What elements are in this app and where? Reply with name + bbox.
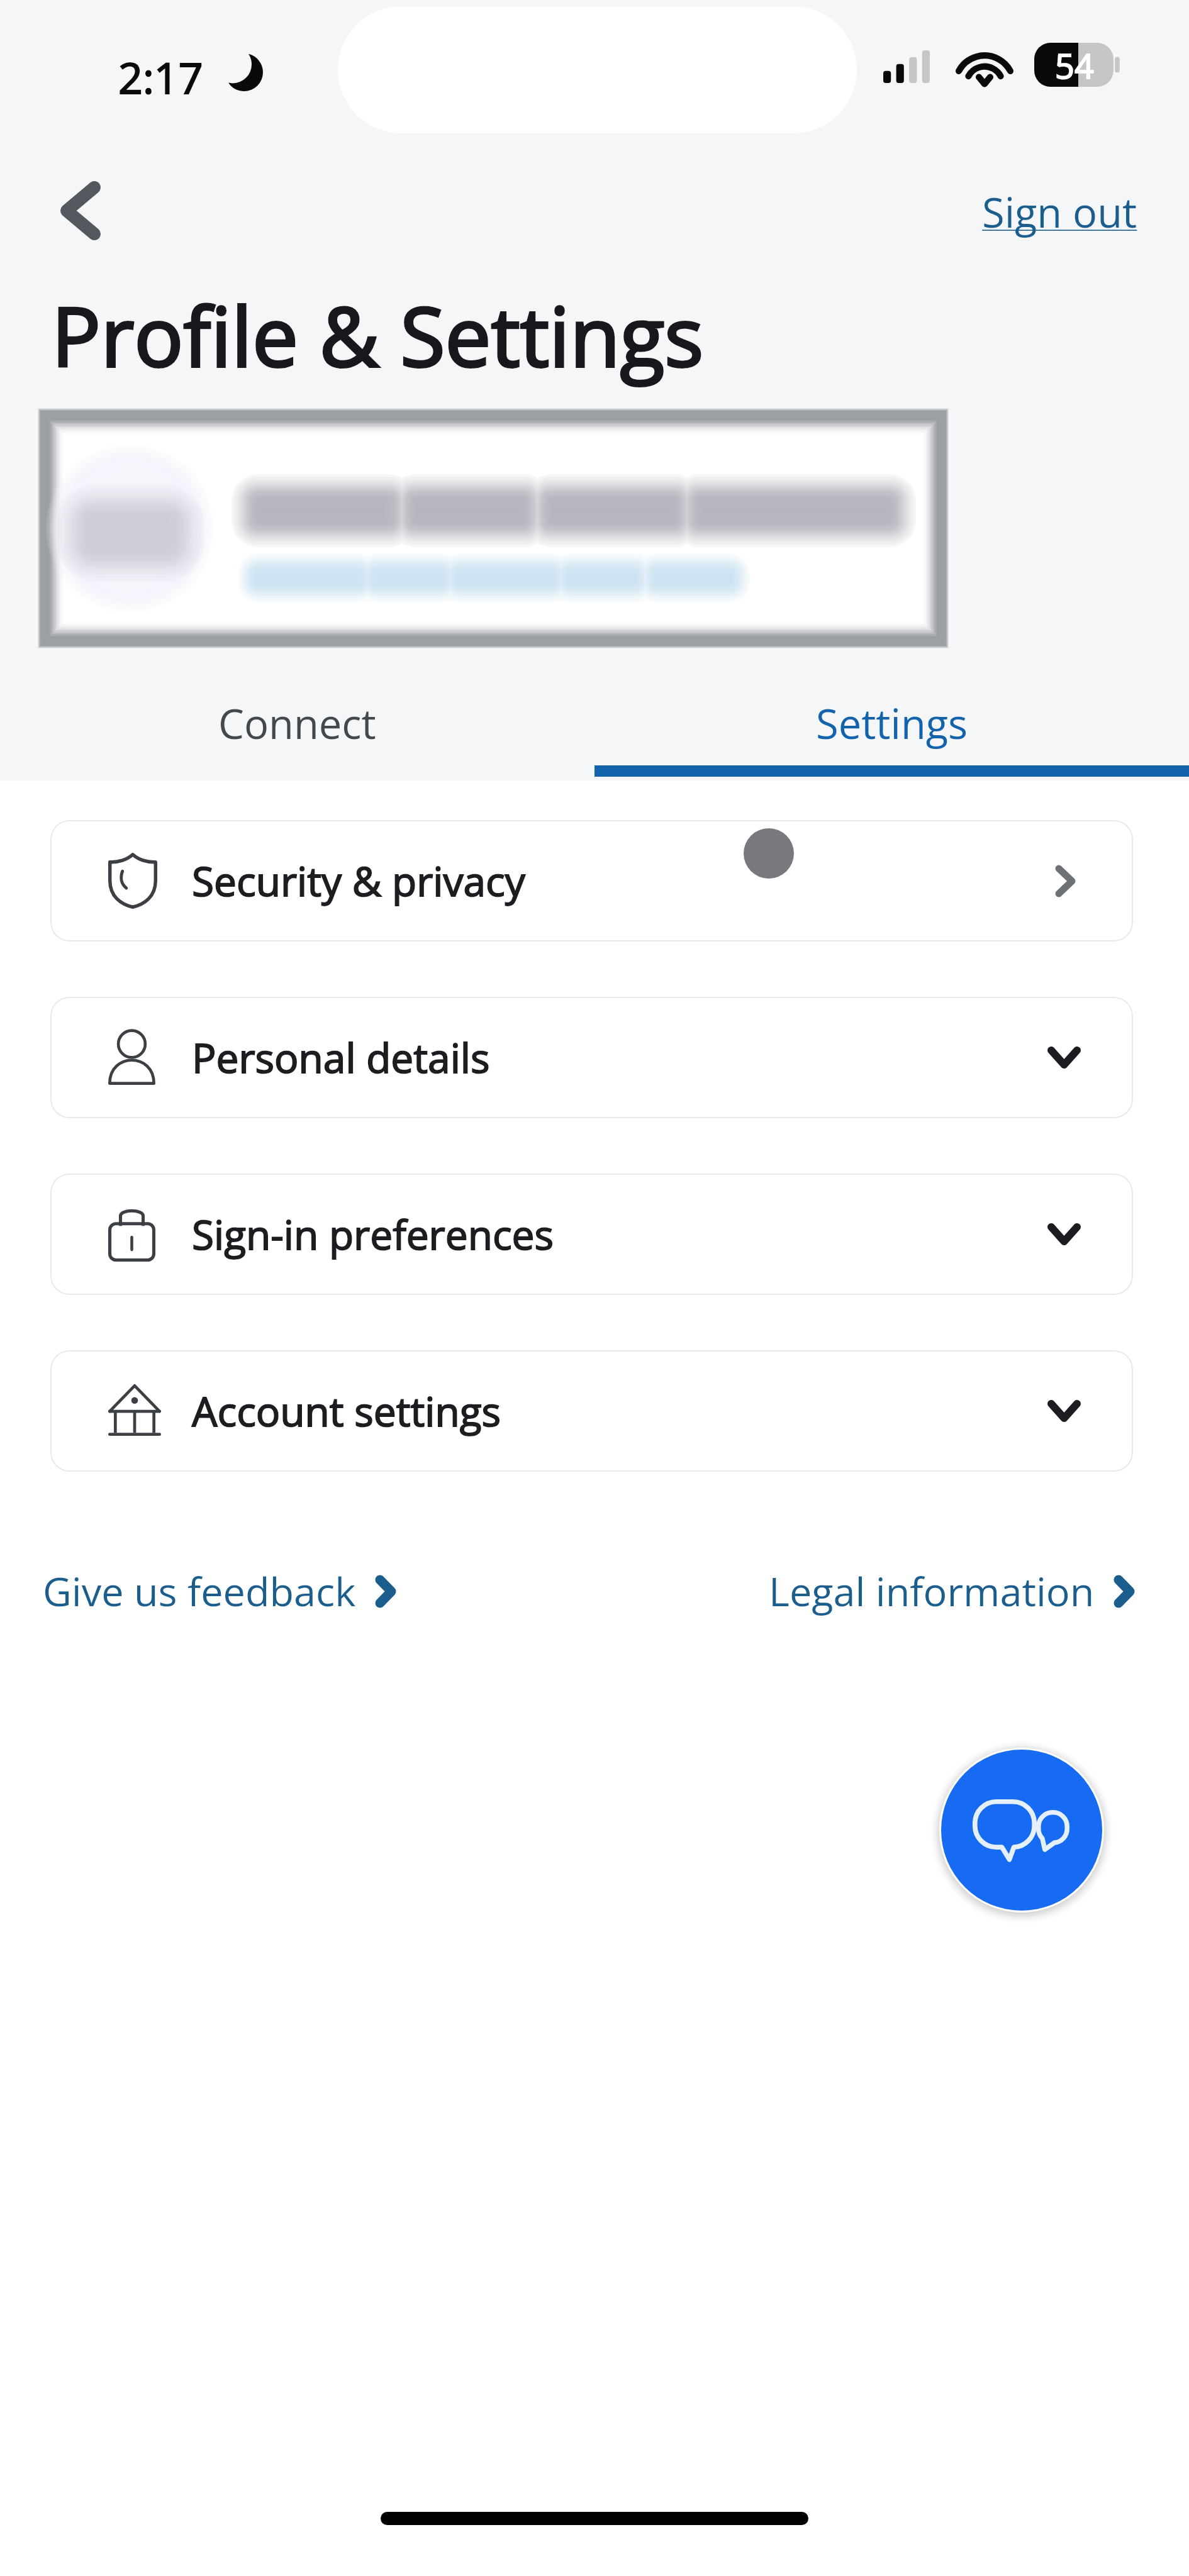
staticText: Connect [218,696,376,752]
staticText: Personal details [192,1030,490,1085]
button[interactable]: Connect [0,672,594,775]
button[interactable]: Account settings [50,1350,1133,1472]
button[interactable]: Sign out [982,184,1137,240]
button[interactable]: Chat with us [941,1750,1102,1911]
button[interactable]: Back [42,172,120,250]
button[interactable]: Legal information [769,1564,1134,1618]
staticText: Account settings [192,1384,501,1438]
button[interactable]: Give us feedback [43,1564,396,1618]
staticText: Legal information [769,1564,1095,1618]
staticText: Give us feedback [43,1564,356,1618]
staticText: Security & privacy [192,853,525,908]
button[interactable]: Personal details [50,997,1133,1118]
button[interactable] [31,402,955,655]
staticText: 2:17 [118,48,203,106]
staticText: Settings [816,696,968,752]
button[interactable]: Sign-in preferences [50,1174,1133,1295]
button[interactable]: Security & privacy [50,820,1133,941]
staticText: Sign out [982,184,1137,240]
staticText: Profile & Settings [52,279,704,391]
staticText: Sign-in preferences [192,1207,554,1262]
staticText: 54 [1055,42,1094,86]
button[interactable]: Settings [594,672,1189,775]
